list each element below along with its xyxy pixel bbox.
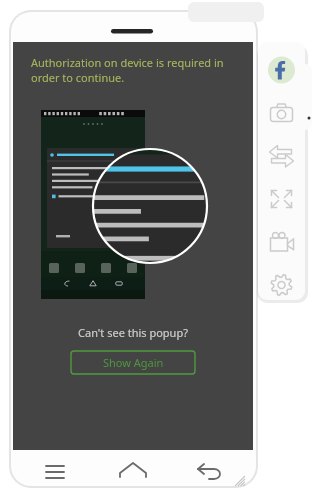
button[interactable]: Home: [116, 455, 150, 489]
button[interactable]: Settings: [260, 272, 304, 312]
button[interactable]: Screenshot: [260, 100, 304, 140]
button[interactable]: Menu: [38, 455, 72, 489]
button[interactable]: File transfer: [260, 143, 304, 183]
button[interactable]: Show Again: [71, 351, 195, 374]
button[interactable]: Back: [192, 455, 226, 489]
staticText: Can't see this popup?: [13, 325, 253, 340]
button[interactable]: Record video: [260, 229, 304, 269]
staticText: Show Again: [103, 355, 164, 370]
staticText: Authorization on device is required in o…: [31, 55, 227, 85]
button[interactable]: Facebook: [260, 57, 304, 97]
button[interactable]: Resize: [260, 186, 304, 226]
